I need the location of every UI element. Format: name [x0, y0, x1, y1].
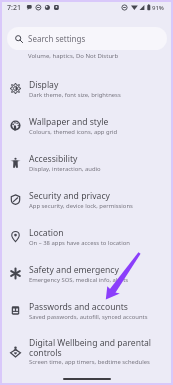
- staticText: Location: [29, 227, 64, 239]
- staticText: Dark theme, font size, brightness: [29, 91, 121, 99]
- staticText: 7:21: [7, 3, 21, 13]
- button[interactable]: Passwords and accounts: [0, 292, 173, 329]
- button[interactable]: Search settings: [7, 27, 167, 50]
- staticText: Search settings: [28, 33, 86, 44]
- staticText: On – 38 apps have access to location: [29, 239, 130, 247]
- button[interactable]: Wallpaper and style: [0, 107, 173, 144]
- staticText: Display, interaction, audio: [29, 165, 101, 173]
- staticText: Security and privacy: [29, 190, 110, 202]
- button[interactable]: Safety and emergency: [0, 255, 173, 292]
- staticText: Screen time, app timers, bedtime schedul…: [29, 358, 150, 366]
- button[interactable]: Display: [0, 70, 173, 107]
- staticText: Passwords and accounts: [29, 301, 128, 313]
- staticText: App security, device lock, permissions: [29, 202, 133, 210]
- staticText: Saved passwords, autofill, synced accoun…: [29, 313, 148, 321]
- staticText: Volume, haptics, Do Not Disturb: [28, 52, 119, 60]
- staticText: Safety and emergency: [29, 264, 119, 276]
- button[interactable]: Accessibility: [0, 144, 173, 181]
- staticText: Accessibility: [29, 153, 78, 165]
- staticText: 91%: [152, 4, 164, 12]
- staticText: Wallpaper and style: [29, 116, 109, 128]
- button[interactable]: Security and privacy: [0, 181, 173, 218]
- button[interactable]: Location: [0, 218, 173, 255]
- button[interactable]: Digital Wellbeing and parental controls: [0, 329, 173, 374]
- staticText: Display: [29, 79, 59, 91]
- staticText: Emergency SOS, medical info, alerts: [29, 276, 129, 284]
- staticText: Colours, themed icons, app grid: [29, 128, 118, 136]
- staticText: Digital Wellbeing and parental controls: [29, 337, 167, 358]
